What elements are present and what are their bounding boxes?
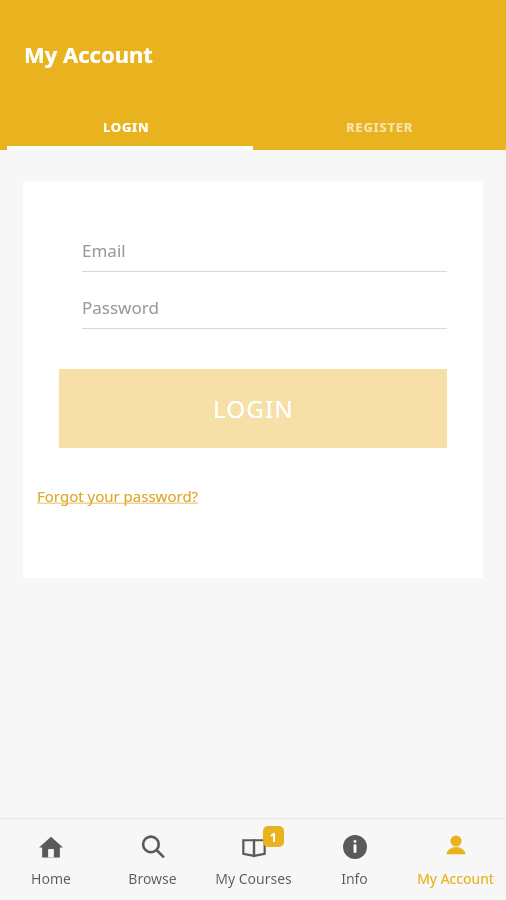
button[interactable]: Forgot your password? bbox=[37, 486, 199, 506]
button[interactable]: My Courses bbox=[203, 819, 304, 900]
staticText: Home bbox=[31, 869, 71, 888]
staticText: LOGIN bbox=[103, 118, 150, 136]
other: My Account bbox=[443, 834, 469, 860]
staticText: My Courses bbox=[215, 869, 292, 888]
button[interactable]: Email bbox=[82, 229, 447, 272]
button[interactable]: REGISTER bbox=[253, 104, 506, 150]
staticText: Forgot your password? bbox=[37, 486, 199, 506]
staticText: My Account bbox=[417, 869, 494, 888]
other: Browse bbox=[140, 834, 166, 860]
staticText: My Account bbox=[24, 39, 153, 69]
button[interactable]: LOGIN bbox=[0, 104, 253, 150]
staticText: 1 bbox=[270, 829, 277, 845]
staticText: LOGIN bbox=[213, 392, 294, 425]
staticText: Password bbox=[82, 296, 159, 319]
staticText: Info bbox=[341, 869, 368, 888]
button[interactable]: Home bbox=[0, 819, 102, 900]
button[interactable]: Browse bbox=[102, 819, 203, 900]
other: Info bbox=[342, 834, 368, 860]
button[interactable]: My Account bbox=[405, 819, 506, 900]
button[interactable]: LOGIN bbox=[59, 369, 447, 448]
button[interactable]: Info bbox=[304, 819, 405, 900]
staticText: Email bbox=[82, 239, 126, 262]
staticText: REGISTER bbox=[346, 118, 414, 136]
other: Home bbox=[38, 834, 64, 860]
staticText: Browse bbox=[128, 869, 177, 888]
button[interactable]: Password bbox=[82, 286, 447, 329]
other: My Courses bbox=[241, 834, 267, 860]
